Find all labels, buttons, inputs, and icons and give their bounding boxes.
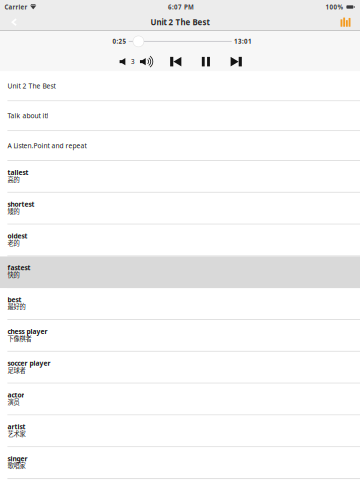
- staticText: 13:01: [234, 37, 252, 46]
- staticText: 高的: [7, 175, 19, 184]
- button[interactable]: fastest: [0, 256, 360, 288]
- button[interactable]: oldest: [0, 225, 360, 256]
- button[interactable]: Previous: [168, 55, 183, 68]
- button[interactable]: best: [0, 288, 360, 320]
- staticText: 6:07 PM: [168, 3, 194, 11]
- staticText: 最好的: [7, 302, 25, 311]
- button[interactable]: Talk about it!: [0, 101, 360, 131]
- staticText: chess player: [7, 327, 47, 336]
- staticText: Unit 2 The Best: [150, 17, 209, 27]
- staticText: 歌唱家: [7, 461, 25, 470]
- staticText: 足球者: [7, 365, 25, 374]
- staticText: 下像棋者: [7, 334, 31, 343]
- staticText: A Listen.Point and repeat: [7, 141, 86, 150]
- staticText: 3: [131, 57, 135, 66]
- button[interactable]: soccer player: [0, 352, 360, 384]
- staticText: fastest: [7, 263, 30, 272]
- staticText: 100%: [326, 3, 344, 11]
- button[interactable]: A Listen.Point and repeat: [0, 131, 360, 161]
- staticText: tallest: [7, 168, 28, 177]
- button[interactable]: Next: [229, 55, 243, 68]
- staticText: shortest: [7, 200, 34, 209]
- staticText: 艺术家: [7, 429, 25, 438]
- button[interactable]: Volume down: [118, 56, 127, 67]
- button[interactable]: tallest: [0, 161, 360, 193]
- staticText: Carrier: [4, 3, 27, 11]
- staticText: 老的: [7, 238, 19, 247]
- button[interactable]: shortest: [0, 193, 360, 225]
- button[interactable]: Unit 2 The Best: [0, 71, 360, 101]
- button[interactable]: artist: [0, 415, 360, 447]
- button[interactable]: Audio levels: [332, 14, 360, 30]
- staticText: Unit 2 The Best: [7, 81, 55, 90]
- staticText: 演员: [7, 397, 19, 406]
- staticText: actor: [7, 390, 24, 399]
- staticText: oldest: [7, 231, 27, 240]
- staticText: Talk about it!: [7, 111, 48, 120]
- button[interactable]: Pause: [200, 55, 212, 68]
- staticText: soccer player: [7, 359, 50, 368]
- button[interactable]: singer: [0, 447, 360, 479]
- button[interactable]: chess player: [0, 320, 360, 352]
- staticText: 矮的: [7, 206, 19, 215]
- button[interactable]: Volume up: [138, 55, 154, 68]
- staticText: best: [7, 295, 21, 304]
- staticText: artist: [7, 422, 25, 431]
- button[interactable]: actor: [0, 384, 360, 415]
- button[interactable]: Back: [0, 15, 27, 30]
- staticText: 快的: [7, 270, 19, 279]
- staticText: 0:25: [112, 37, 126, 46]
- staticText: singer: [7, 454, 27, 463]
